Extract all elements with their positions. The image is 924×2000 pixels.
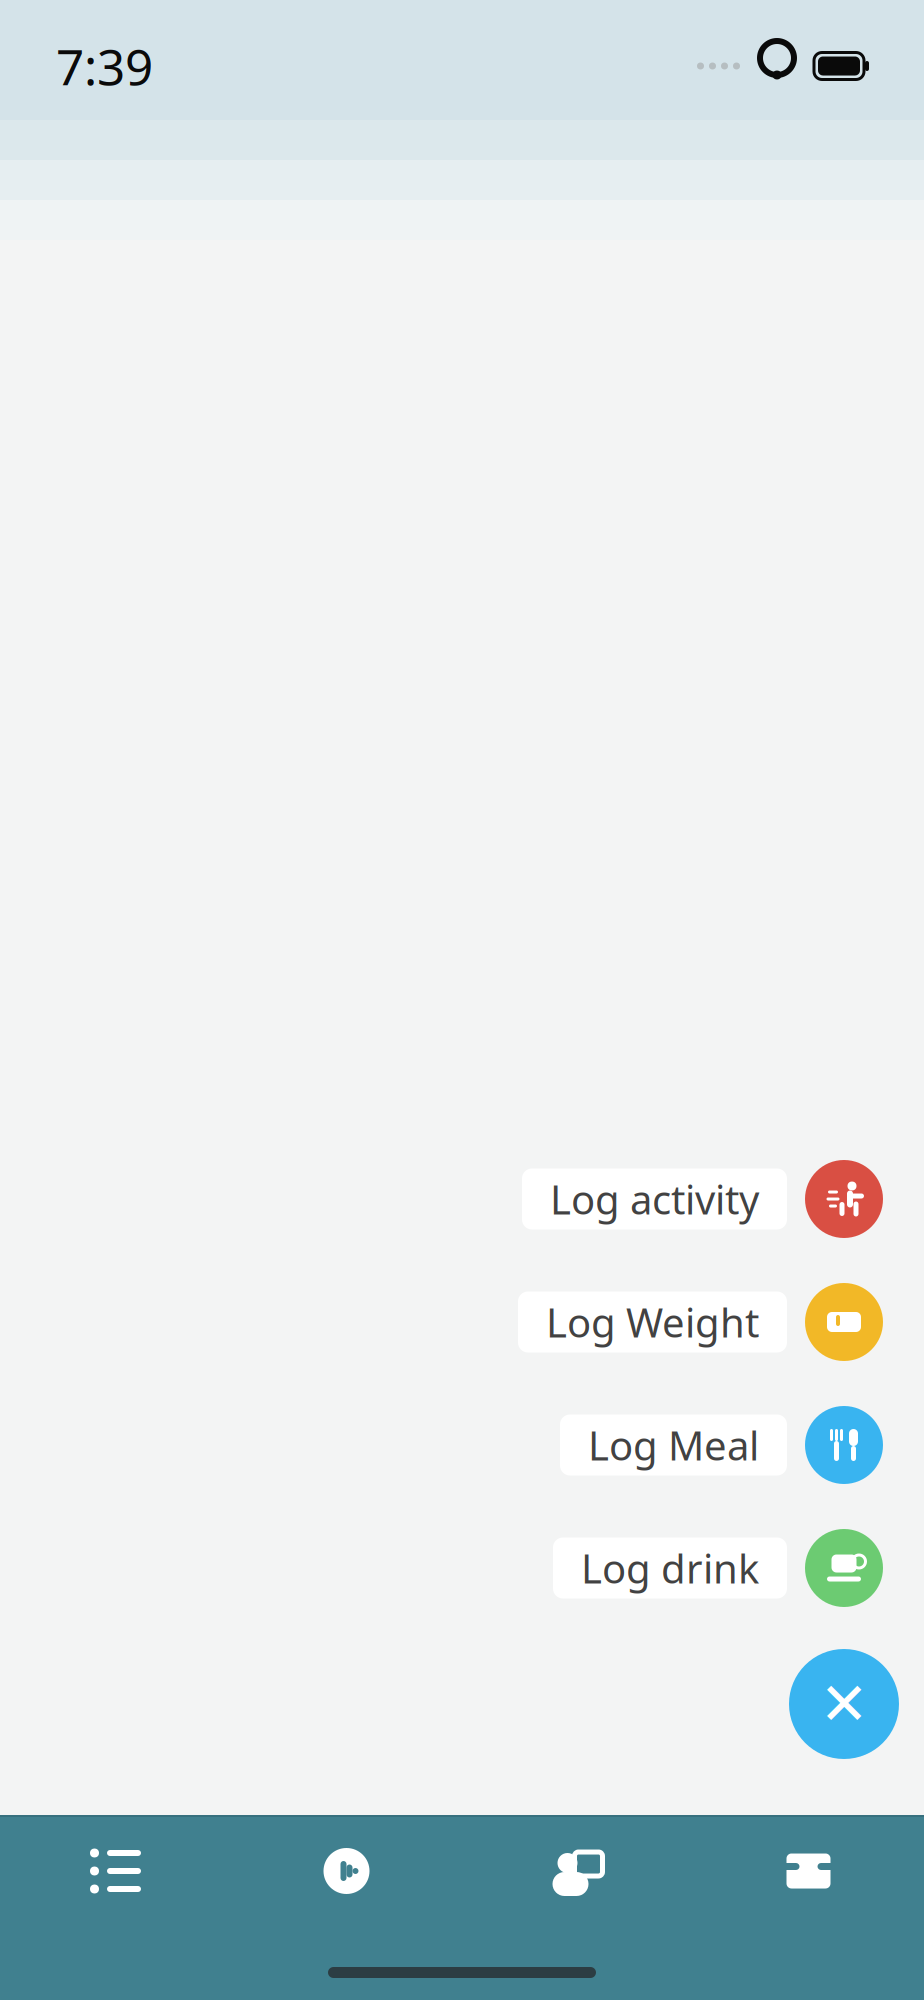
button[interactable]: Close menu bbox=[789, 1649, 899, 1759]
staticText: 7:39 bbox=[56, 33, 153, 99]
button[interactable]: Messages bbox=[693, 1817, 924, 1925]
button[interactable]: Log drink bbox=[0, 1529, 924, 1607]
staticText: Log drink bbox=[581, 1541, 759, 1594]
button[interactable]: Log Meal bbox=[0, 1406, 924, 1484]
staticText: Log activity bbox=[550, 1172, 759, 1225]
staticText: Log Weight bbox=[546, 1295, 759, 1348]
button[interactable]: Plans bbox=[0, 1817, 231, 1925]
button[interactable]: Log Weight bbox=[0, 1283, 924, 1361]
staticText: ✕ bbox=[819, 1671, 868, 1737]
button[interactable]: Coach bbox=[462, 1817, 693, 1925]
button[interactable]: Log activity bbox=[0, 1160, 924, 1238]
button[interactable]: Videos bbox=[231, 1817, 462, 1925]
staticText: Log Meal bbox=[588, 1418, 759, 1471]
